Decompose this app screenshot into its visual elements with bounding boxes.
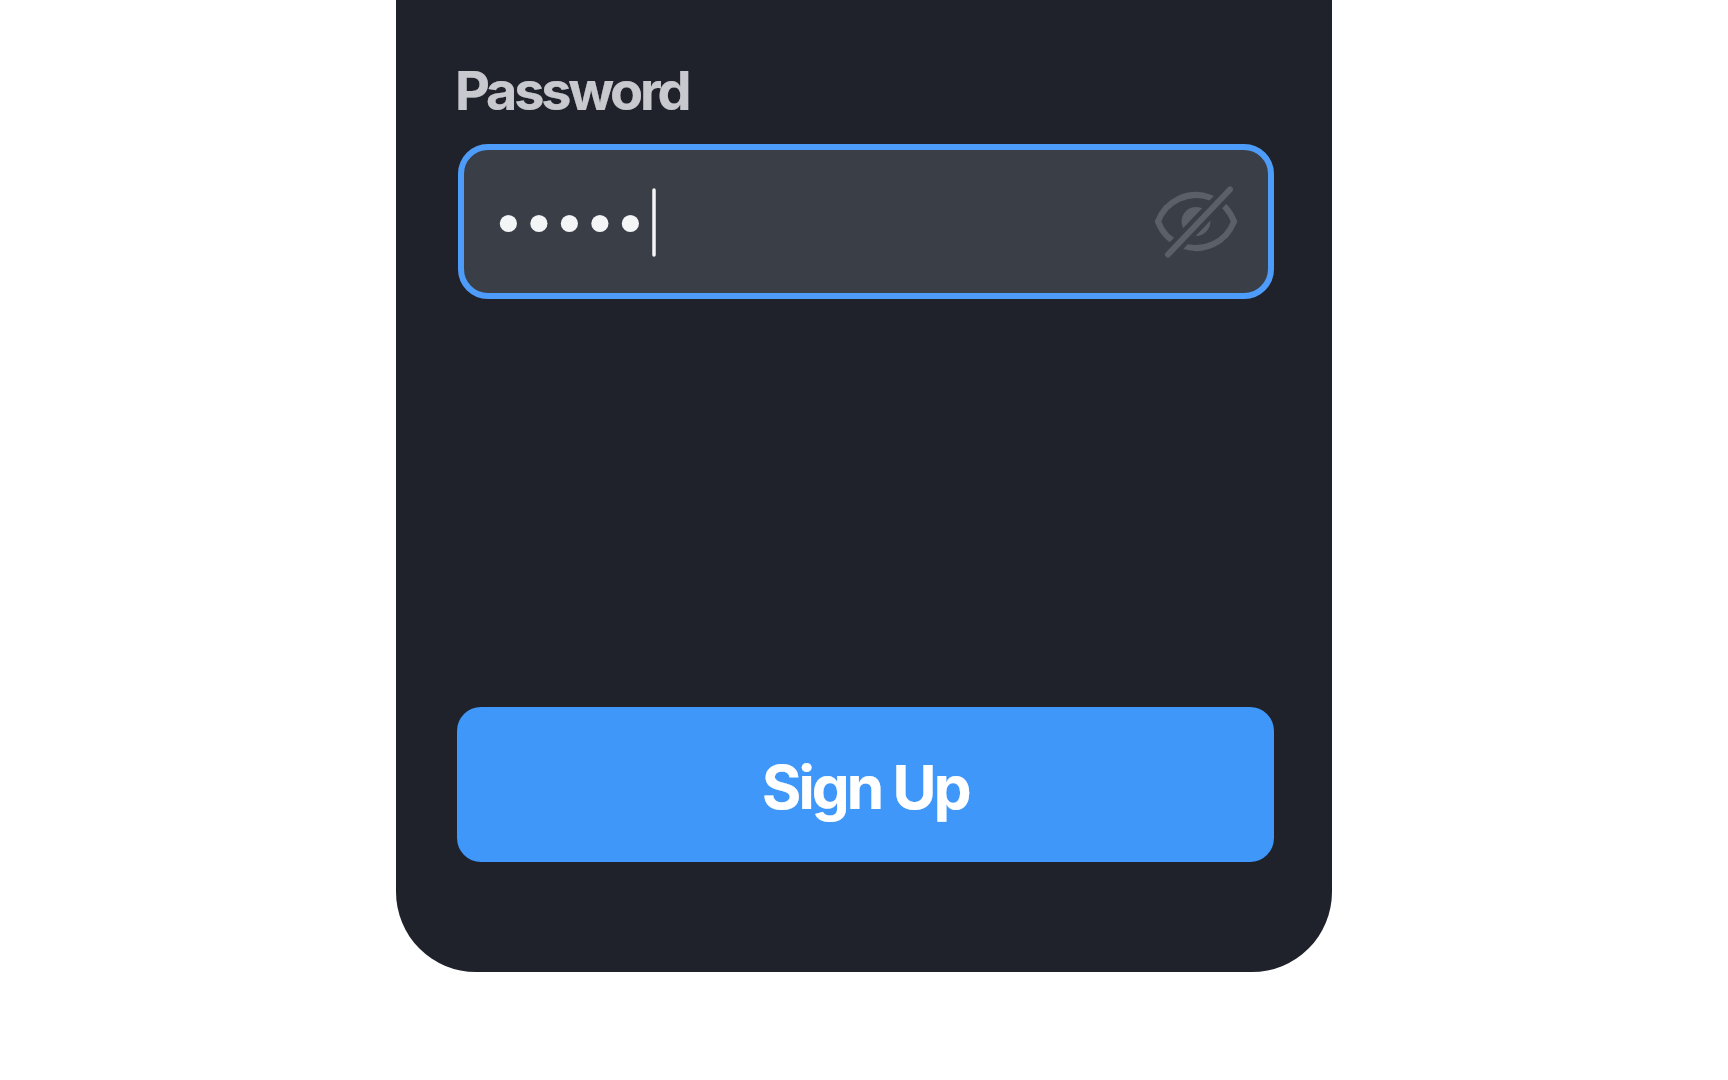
button[interactable] [1158, 184, 1234, 260]
button[interactable] [458, 144, 1274, 299]
staticText: Sign Up [762, 751, 969, 824]
staticText: Password [455, 58, 689, 123]
button[interactable]: Sign Up [457, 707, 1274, 862]
